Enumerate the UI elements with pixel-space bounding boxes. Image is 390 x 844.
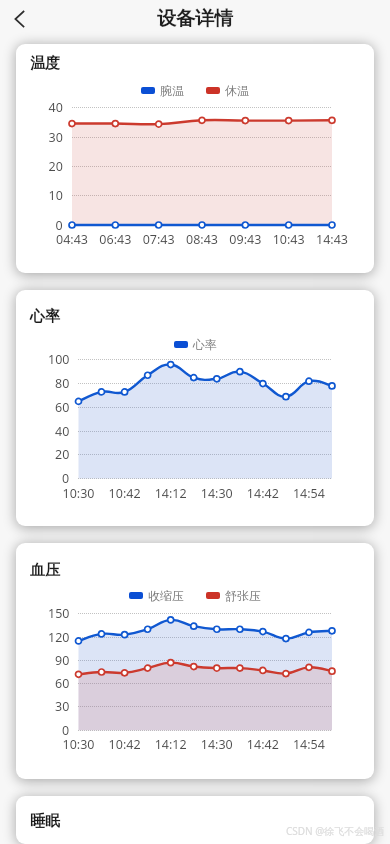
staticText: 腕温 bbox=[160, 83, 184, 98]
button[interactable]: 温度 bbox=[16, 44, 374, 273]
button[interactable]: Back bbox=[0, 0, 40, 38]
staticText: 温度 bbox=[30, 54, 60, 73]
button[interactable]: 睡眠 bbox=[16, 796, 374, 844]
staticText: 睡眠 bbox=[30, 812, 60, 831]
button[interactable]: 心率 bbox=[16, 290, 374, 526]
button[interactable]: 血压 bbox=[16, 543, 374, 779]
staticText: 血压 bbox=[30, 561, 60, 580]
staticText: 心率 bbox=[30, 307, 60, 326]
staticText: 收缩压 bbox=[148, 588, 184, 603]
staticText: 休温 bbox=[225, 83, 249, 98]
staticText: 舒张压 bbox=[225, 588, 261, 603]
staticText: 设备详情 bbox=[157, 7, 233, 31]
staticText: 心率 bbox=[193, 337, 217, 352]
staticText: CSDN @徐飞不会喝酒 bbox=[286, 824, 385, 838]
